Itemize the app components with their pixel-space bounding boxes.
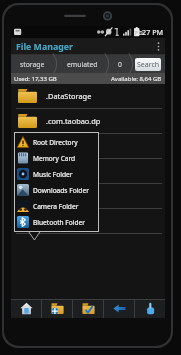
staticText: Downloads Folder: [33, 186, 89, 195]
button[interactable]: Bluetooth Folder: [15, 214, 98, 230]
button[interactable]: storage: [11, 55, 53, 73]
staticText: Camera Folder: [33, 202, 79, 211]
button[interactable]: Root Directory: [15, 134, 98, 150]
button[interactable]: .MySteps: [11, 159, 165, 184]
staticText: .MySteps: [46, 166, 78, 176]
button[interactable]: Camera Folder: [15, 198, 98, 214]
staticText: 0: [118, 60, 122, 69]
button[interactable]: Select all: [73, 299, 103, 318]
button[interactable]: .DataStorage: [11, 84, 165, 109]
button[interactable]: Music Folder: [15, 166, 98, 182]
button[interactable]: Search: [135, 58, 161, 71]
button[interactable]: [11, 209, 165, 234]
staticText: .face: [46, 141, 63, 151]
staticText: Bluetooth Folder: [33, 218, 85, 227]
staticText: .SPenSDK30: [46, 191, 88, 201]
staticText: emulated: [67, 60, 98, 69]
staticText: Music Folder: [33, 170, 73, 179]
button[interactable]: Memory Card: [15, 150, 98, 166]
button[interactable]: .com.taobao.dp: [11, 109, 165, 134]
button[interactable]: .face: [11, 134, 165, 159]
staticText: 76%: [134, 29, 145, 36]
staticText: Used: 17,33 GB: [14, 75, 57, 83]
button[interactable]: Home: [11, 299, 41, 318]
staticText: .DataStorage: [46, 91, 92, 101]
button[interactable]: Paste: [135, 299, 165, 318]
staticText: File Manager: [16, 41, 73, 53]
button[interactable]: Downloads Folder: [15, 182, 98, 198]
staticText: Root Directory: [33, 138, 78, 147]
button[interactable]: 0: [111, 55, 129, 73]
staticText: Search: [137, 60, 160, 70]
button[interactable]: New folder: [42, 299, 72, 318]
button[interactable]: emulated: [59, 55, 105, 73]
button[interactable]: Back: [104, 299, 134, 318]
staticText: Available: 8,64 GB: [111, 75, 162, 83]
staticText: .com.taobao.dp: [46, 116, 101, 126]
staticText: 2:27 PM: [136, 27, 163, 37]
staticText: Memory Card: [33, 154, 76, 163]
button[interactable]: .SPenSDK30: [11, 184, 165, 209]
button[interactable]: More options: [152, 38, 165, 55]
staticText: storage: [20, 60, 45, 69]
